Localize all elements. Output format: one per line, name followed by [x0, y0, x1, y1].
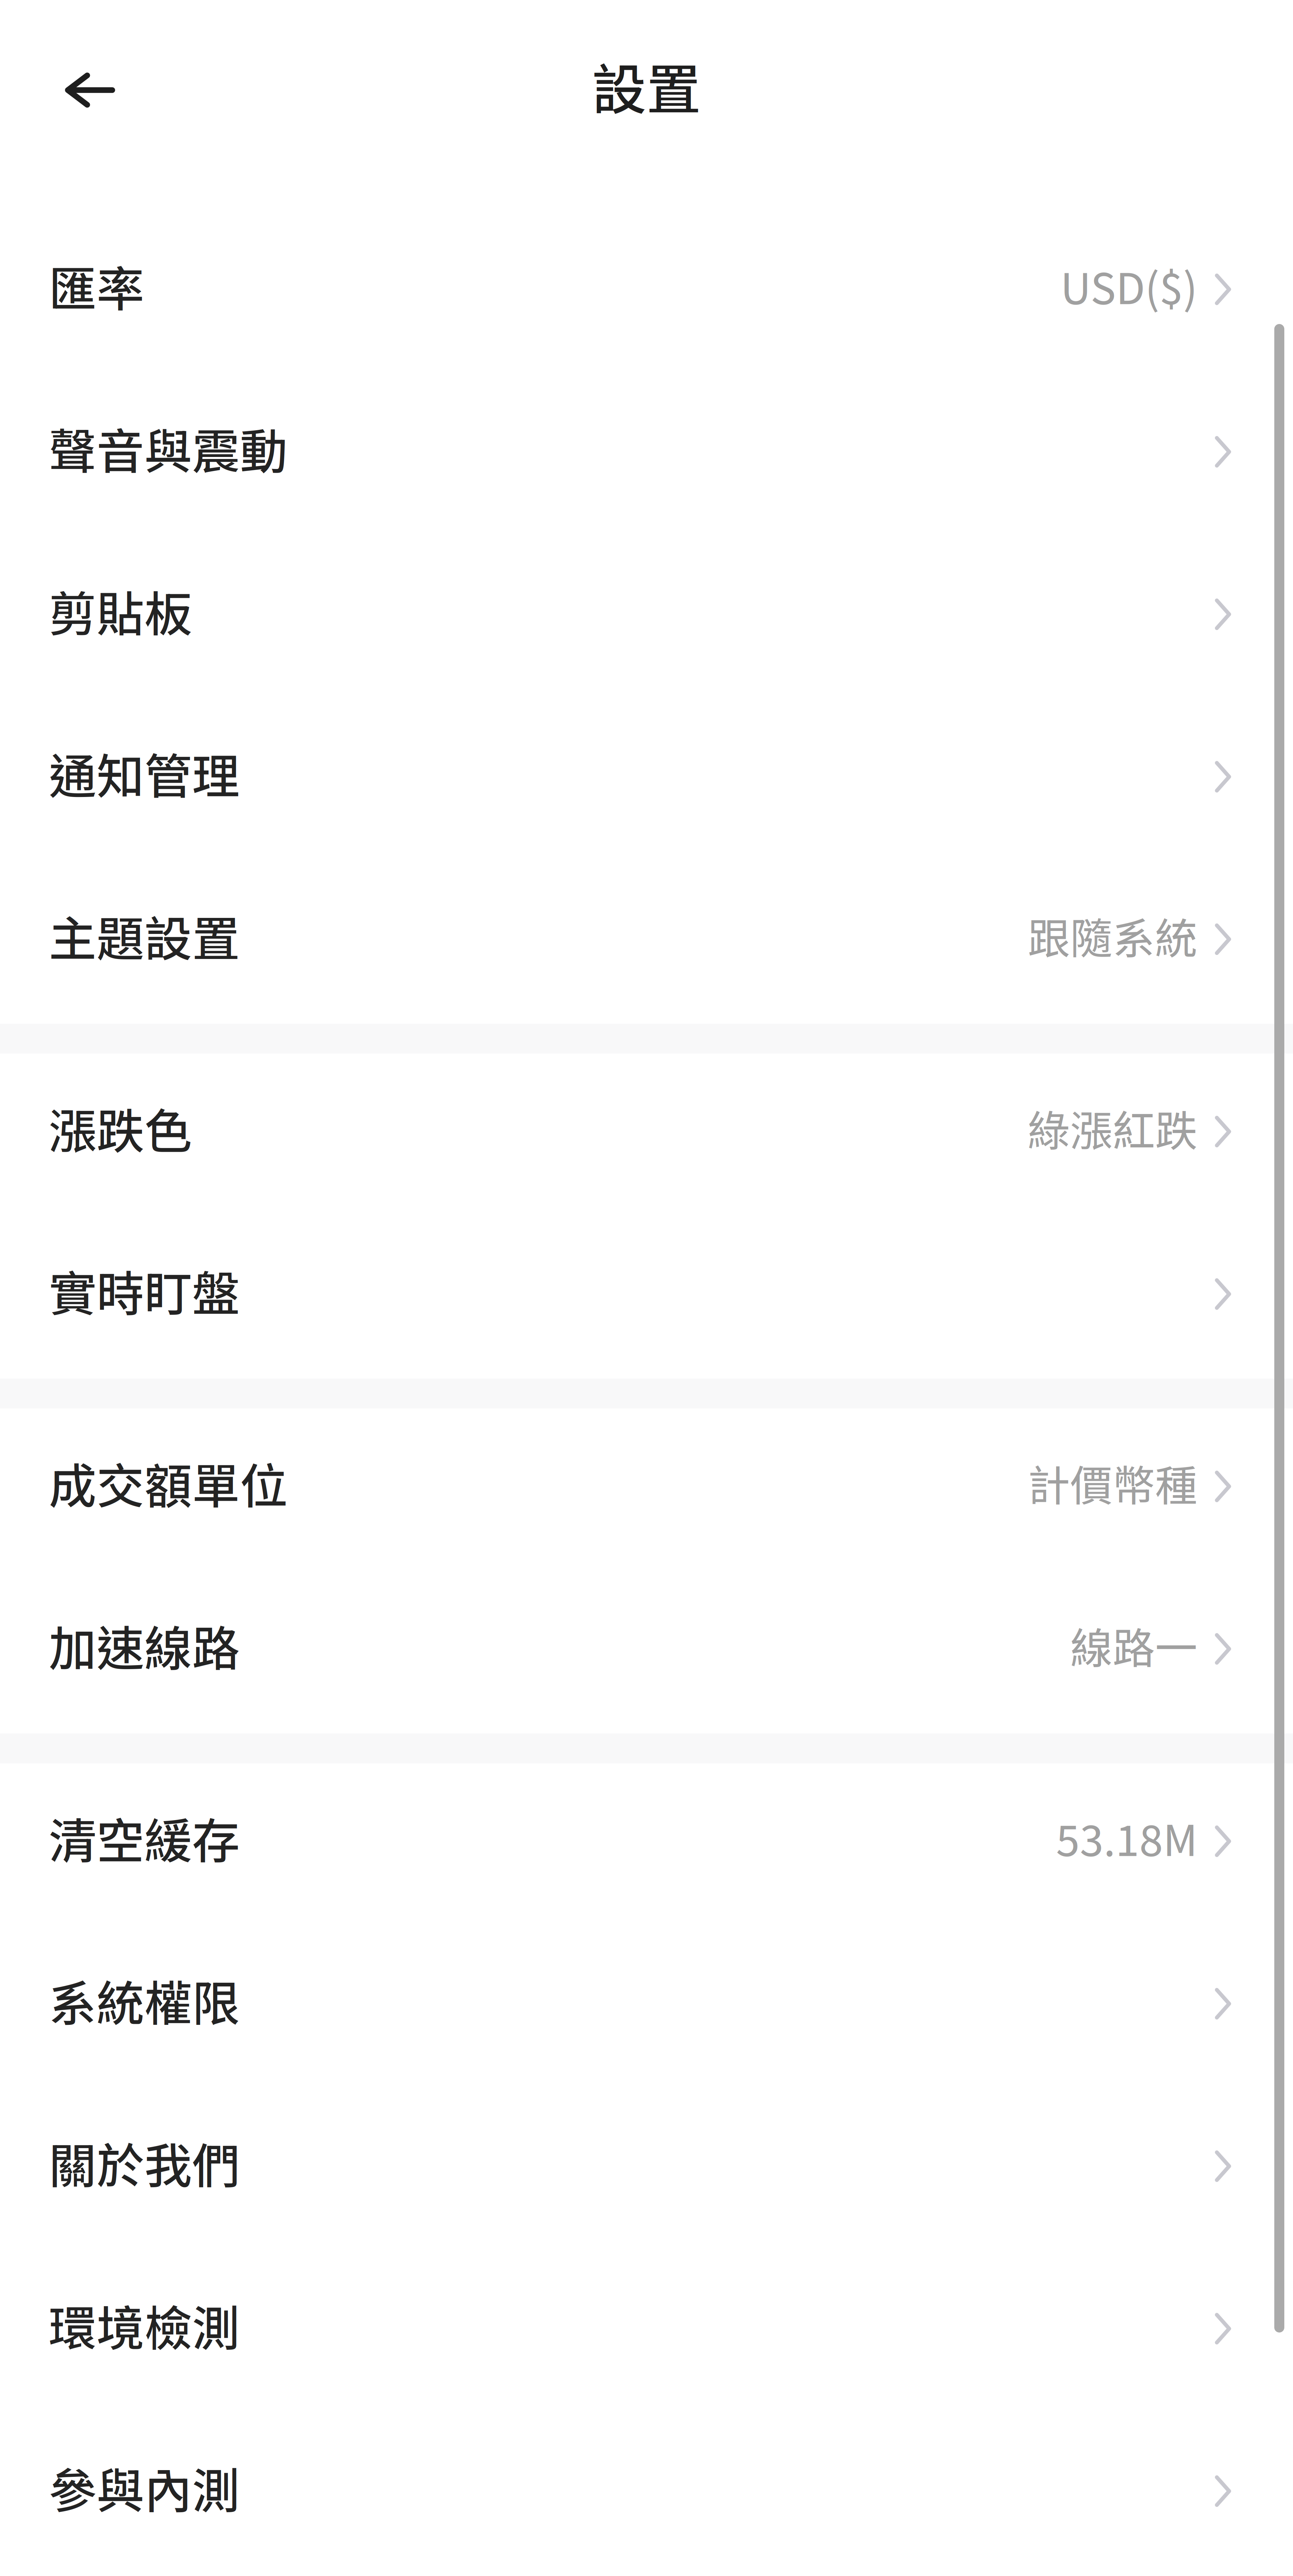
staticText: 匯率 — [49, 251, 144, 320]
staticText: 綠漲紅跌 — [1028, 1097, 1197, 1159]
staticText: USD($) — [1060, 255, 1197, 316]
staticText: 實時盯盤 — [49, 1256, 240, 1325]
staticText: 主題設置 — [49, 901, 240, 970]
staticText: 跟隨系統 — [1028, 905, 1197, 966]
staticText: 設置 — [592, 46, 701, 125]
button[interactable]: 漲跌色 — [0, 1054, 1293, 1216]
button[interactable]: Back — [0, 54, 135, 126]
staticText: 加速線路 — [49, 1611, 240, 1680]
button[interactable]: 系統權限 — [0, 1926, 1293, 2088]
staticText: 清空緩存 — [49, 1803, 240, 1872]
button[interactable]: 加速線路 — [0, 1571, 1293, 1733]
staticText: 漲跌色 — [49, 1093, 192, 1162]
button[interactable]: 參與內測 — [0, 2413, 1293, 2576]
staticText: 線路一 — [1070, 1615, 1197, 1676]
button[interactable]: 主題設置 — [0, 861, 1293, 1024]
staticText: 關於我們 — [49, 2128, 240, 2197]
staticText: 通知管理 — [49, 739, 240, 808]
staticText: 參與內測 — [49, 2453, 240, 2522]
button[interactable]: 清空緩存 — [0, 1763, 1293, 1926]
button[interactable]: 匯率 — [0, 211, 1293, 374]
staticText: 聲音與震動 — [49, 414, 288, 483]
staticText: 環境檢測 — [49, 2290, 240, 2359]
button[interactable]: 通知管理 — [0, 699, 1293, 861]
staticText: 成交額單位 — [49, 1448, 288, 1517]
button[interactable]: 成交額單位 — [0, 1409, 1293, 1571]
button[interactable]: 關於我們 — [0, 2088, 1293, 2251]
button[interactable]: 環境檢測 — [0, 2251, 1293, 2413]
staticText: 剪貼板 — [49, 576, 192, 645]
button[interactable]: 剪貼板 — [0, 536, 1293, 699]
staticText: 系統權限 — [49, 1966, 240, 2035]
button[interactable]: 聲音與震動 — [0, 374, 1293, 536]
staticText: 53.18M — [1056, 1807, 1197, 1868]
staticText: 計價幣種 — [1028, 1452, 1197, 1513]
button[interactable]: 實時盯盤 — [0, 1216, 1293, 1379]
